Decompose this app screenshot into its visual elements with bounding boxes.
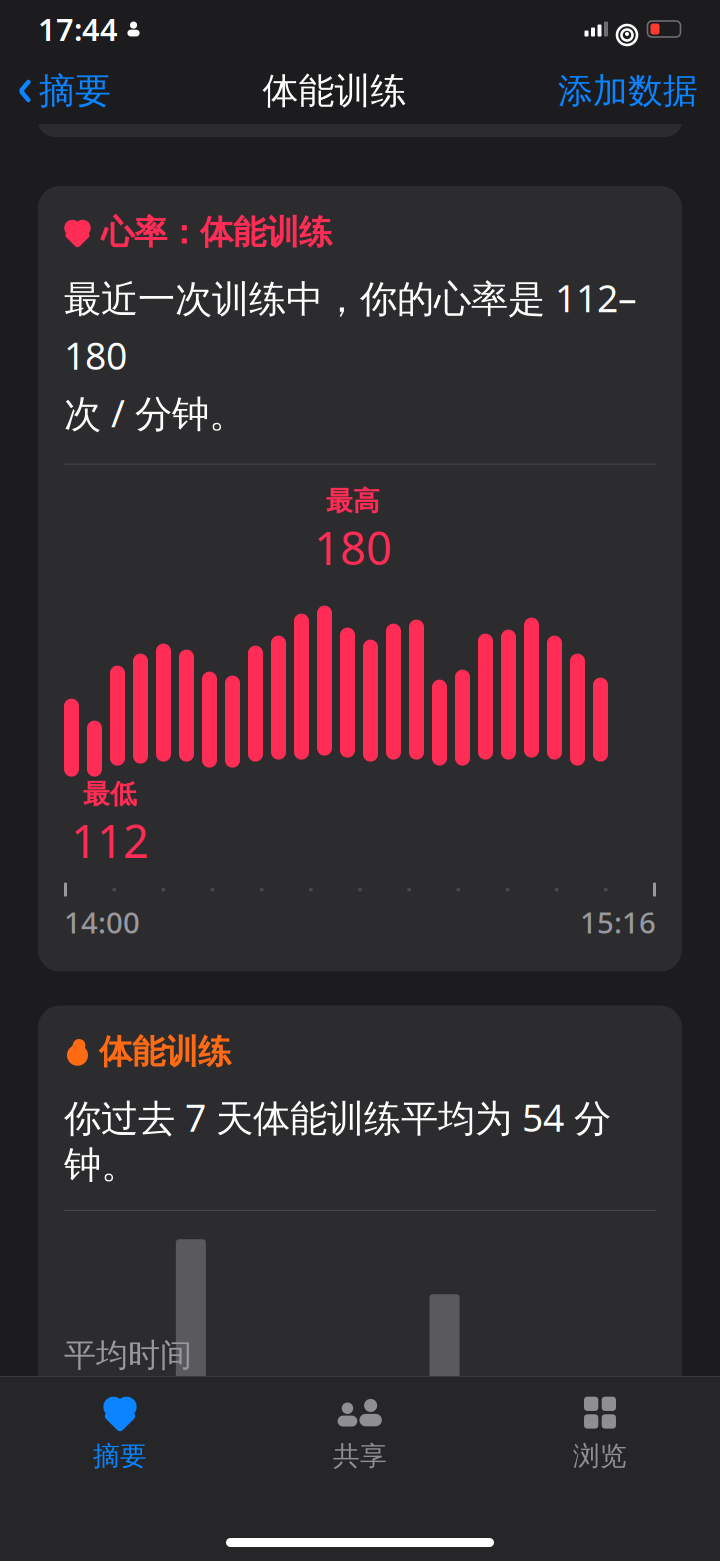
staticText: 添加数据 — [558, 70, 698, 112]
staticText: 分钟 — [138, 1428, 208, 1470]
staticText: 112 — [71, 810, 149, 871]
button[interactable]: 添加数据 — [558, 62, 720, 120]
staticText: 浏览 — [573, 1440, 627, 1472]
staticText: 54 — [64, 1399, 132, 1477]
staticText: 最高 — [326, 485, 380, 517]
staticText: 摘要 — [93, 1440, 147, 1472]
staticText: 体能训练 — [262, 69, 406, 113]
staticText: 14:00 — [64, 903, 140, 942]
staticText: 15:16 — [580, 903, 656, 942]
staticText: 180 — [314, 517, 392, 578]
staticText: 最近一次训练中，你的心率是 112–180 次 / 分钟。 — [64, 273, 637, 438]
button[interactable]: 摘要 — [0, 1382, 240, 1478]
staticText: 你过去 7 天体能训练平均为 54 分钟。 — [64, 1092, 611, 1188]
button[interactable]: 共享 — [240, 1382, 480, 1478]
staticText: 体能训练 — [99, 1031, 231, 1072]
staticText: 摘要 — [39, 69, 111, 113]
staticText: 最低 — [83, 778, 137, 810]
staticText: 平均时间 — [64, 1336, 192, 1375]
button[interactable]: 摘要 — [0, 61, 111, 121]
staticText: 17:44 — [38, 9, 118, 49]
staticText: 心率：体能训练 — [101, 212, 332, 253]
button[interactable]: 浏览 — [480, 1382, 720, 1478]
staticText: 共享 — [333, 1440, 387, 1472]
